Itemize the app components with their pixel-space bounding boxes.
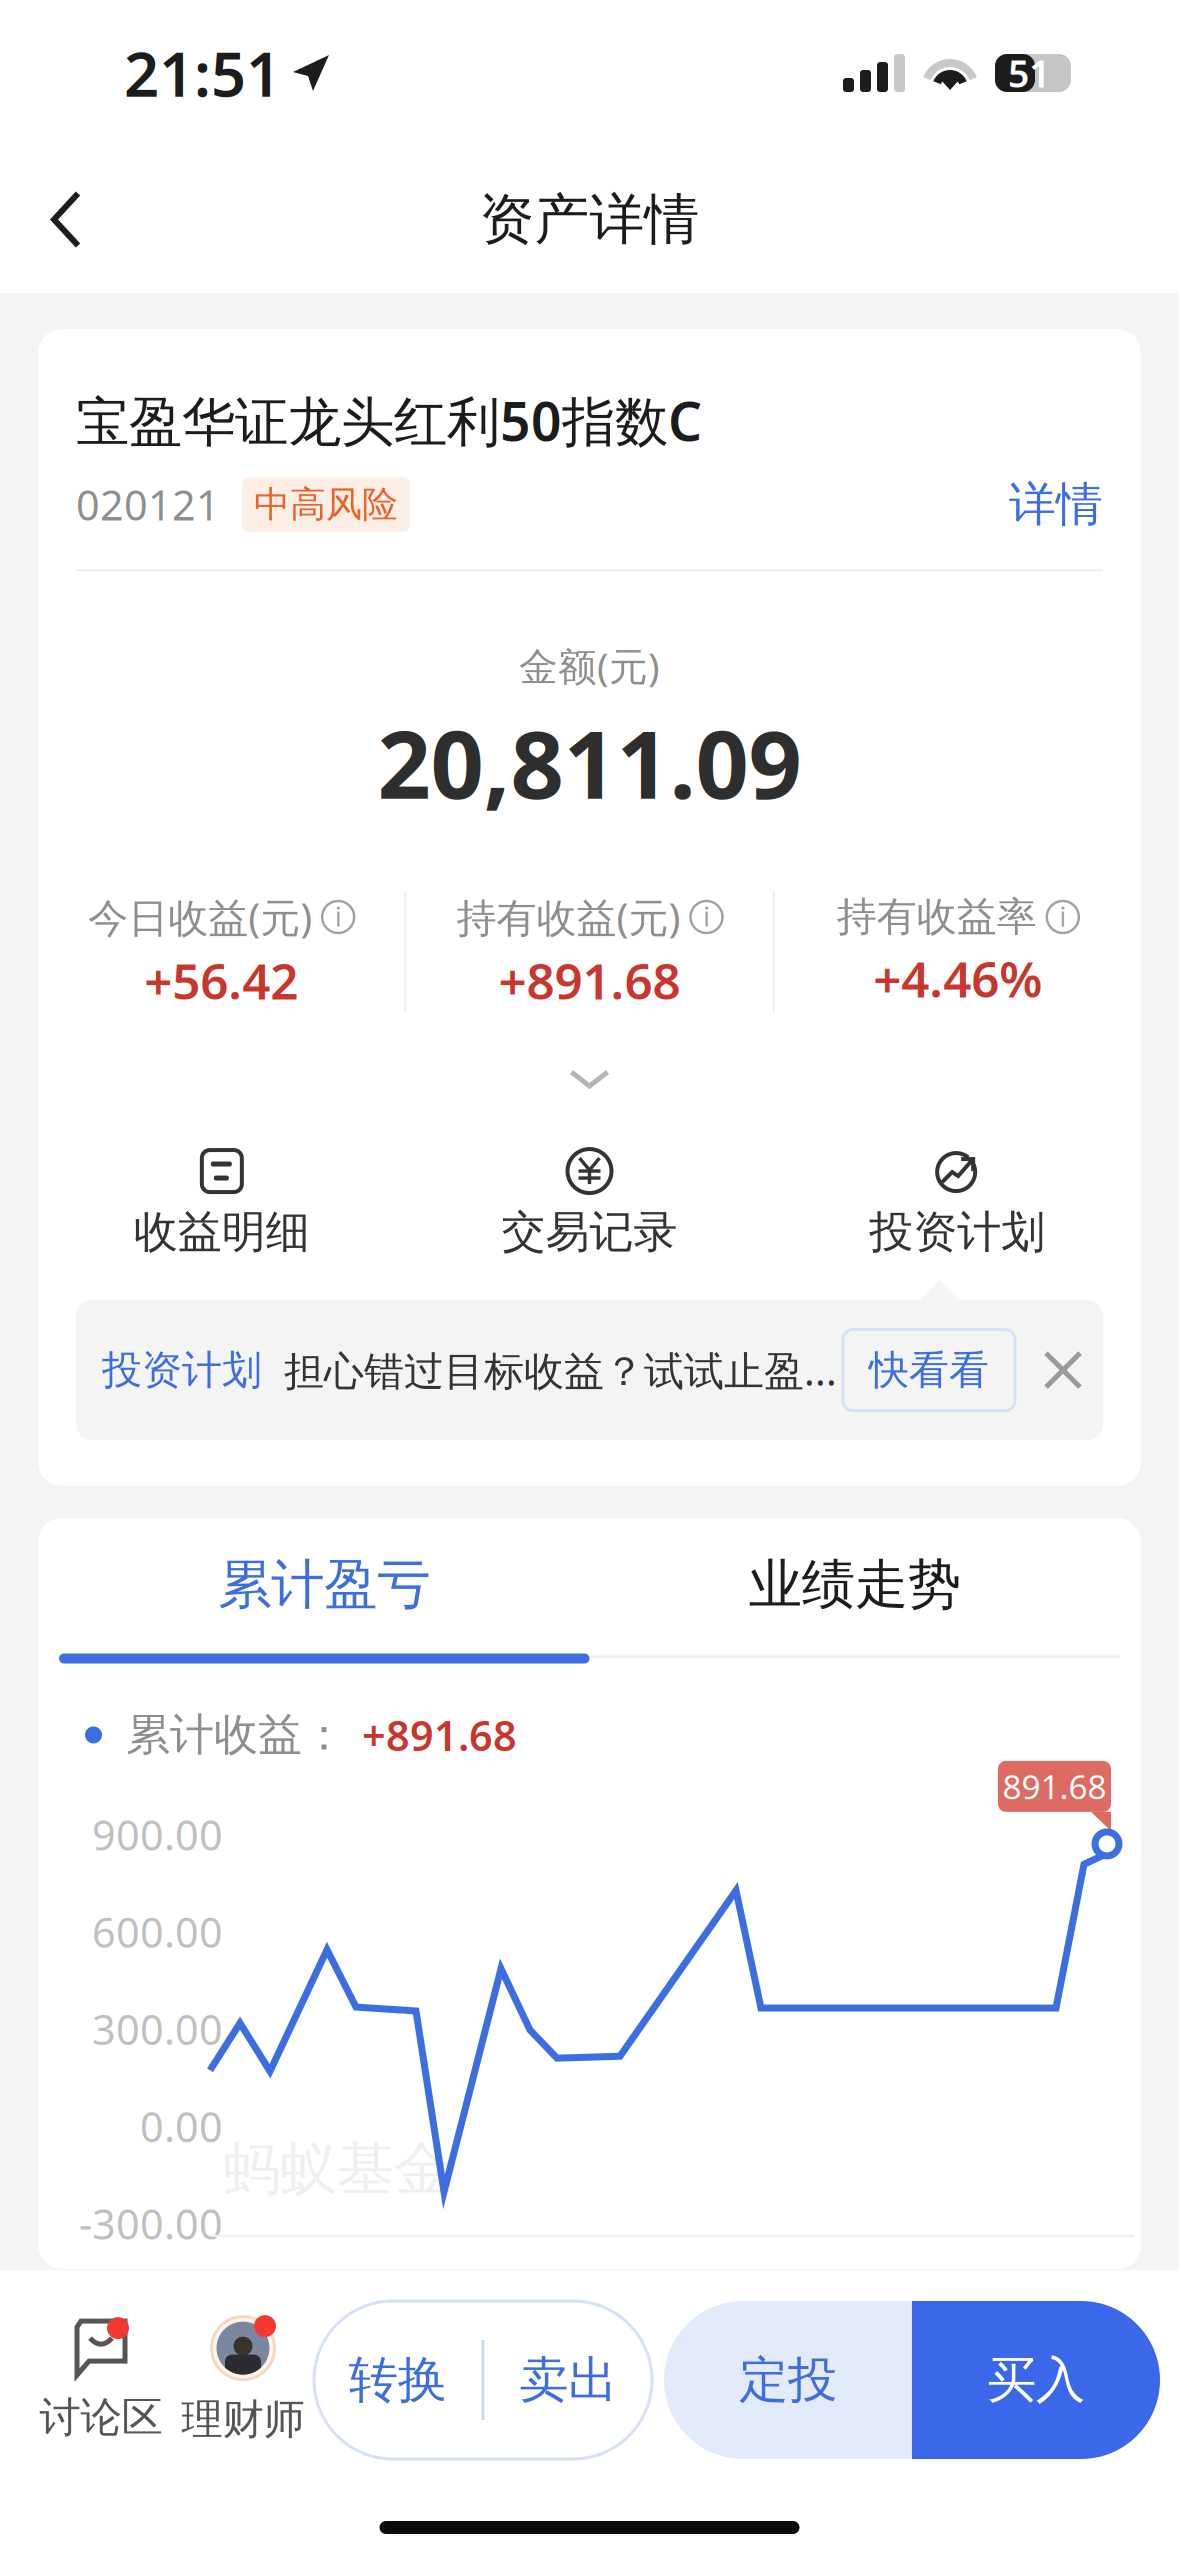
staticText: 20,811.09 [377, 700, 801, 824]
button[interactable]: 累计盈亏 [59, 1518, 589, 1663]
staticText: 卖出 [519, 2350, 617, 2410]
button[interactable]: 理财师 [172, 2300, 314, 2460]
staticText: i [703, 901, 709, 933]
staticText: 0.00 [140, 2099, 223, 2154]
staticText: 累计盈亏 [218, 1552, 430, 1617]
button[interactable]: 收益明细 [38, 1149, 406, 1259]
staticText: 详情 [1009, 476, 1103, 533]
button[interactable]: 详情 [1009, 476, 1103, 533]
staticText: 900.00 [92, 1807, 223, 1862]
staticText: +56.42 [144, 948, 298, 1013]
staticText: 收益明细 [134, 1205, 310, 1259]
staticText: 宝盈华证龙头红利50指数C [76, 385, 702, 456]
button[interactable]: 投资计划 [773, 1149, 1141, 1259]
button[interactable]: Close [1015, 1350, 1083, 1390]
staticText: 快看看 [869, 1345, 989, 1395]
staticText: 资产详情 [479, 186, 699, 253]
staticText: 业绩走势 [749, 1552, 961, 1617]
staticText: 转换 [349, 2350, 447, 2410]
staticText: 今日收益(元) [88, 890, 312, 943]
button[interactable]: 买入 [912, 2301, 1160, 2459]
staticText: 讨论区 [39, 2392, 162, 2443]
button[interactable]: 交易记录 [406, 1149, 773, 1259]
staticText: 中高风险 [254, 482, 398, 527]
staticText: i [335, 901, 341, 933]
staticText: +891.68 [362, 1707, 517, 1762]
button[interactable]: 业绩走势 [589, 1518, 1120, 1663]
staticText: 持有收益(元) [456, 890, 680, 943]
staticText: 定投 [739, 2350, 837, 2410]
staticText: 金额(元) [519, 640, 660, 691]
staticText: 持有收益率 [837, 892, 1037, 941]
staticText: -300.00 [79, 2196, 223, 2251]
button[interactable]: 快看看 [843, 1329, 1015, 1411]
staticText: 51 [1008, 48, 1050, 98]
staticText: 020121 [76, 477, 220, 532]
staticText: 交易记录 [501, 1205, 677, 1259]
staticText: 891.68 [1002, 1764, 1106, 1809]
staticText: 投资计划 [869, 1205, 1045, 1259]
button[interactable]: 讨论区 [30, 2300, 172, 2460]
staticText: 累计收益： [126, 1708, 346, 1762]
staticText: 担心错过目标收益？试试止盈... [284, 1343, 837, 1397]
staticText: 买入 [987, 2350, 1085, 2410]
staticText: +4.46% [873, 946, 1042, 1011]
button[interactable]: 转换 [314, 2301, 481, 2459]
staticText: 300.00 [92, 2001, 223, 2056]
staticText: 600.00 [92, 1904, 223, 1959]
button[interactable]: 定投 [664, 2301, 912, 2459]
staticText: 理财师 [181, 2394, 304, 2445]
staticText: 21:51 [124, 32, 281, 114]
staticText: 投资计划 [102, 1345, 262, 1395]
button[interactable]: 卖出 [484, 2301, 652, 2459]
staticText: i [1060, 901, 1066, 933]
staticText: 蚂蚁基金 [223, 2134, 451, 2204]
staticText: +891.68 [498, 948, 680, 1013]
button[interactable]: Back [0, 164, 126, 274]
